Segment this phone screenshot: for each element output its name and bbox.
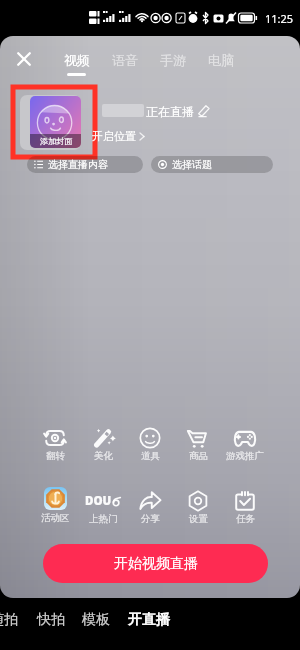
staticText: 道具: [141, 450, 160, 462]
staticText: 选择直播内容: [48, 158, 108, 171]
button[interactable]: 选择直播内容: [27, 156, 143, 173]
button[interactable]: 开启位置: [92, 129, 145, 143]
staticText: 开始视频直播: [114, 555, 198, 573]
button[interactable]: 随拍: [0, 611, 18, 629]
button[interactable]: 设置: [174, 490, 222, 525]
button[interactable]: 分享: [126, 490, 174, 525]
button[interactable]: 任务: [221, 490, 269, 525]
button[interactable]: 活动区: [31, 487, 79, 524]
staticText: 开启位置: [92, 129, 136, 143]
button[interactable]: 电脑: [207, 52, 234, 68]
button[interactable]: Add cover: [13, 87, 95, 157]
button[interactable]: 道具: [126, 427, 174, 462]
staticText: 上热门: [89, 513, 118, 525]
button[interactable]: 视频: [63, 52, 90, 76]
button[interactable]: 美化: [79, 427, 127, 462]
staticText: 分享: [141, 513, 160, 525]
staticText: 正在直播: [146, 104, 194, 119]
button[interactable]: 游戏推广: [221, 427, 269, 462]
button[interactable]: 开直播: [128, 611, 170, 629]
staticText: 美化: [94, 450, 113, 462]
staticText: 模板: [82, 611, 110, 629]
staticText: 商品: [189, 450, 208, 462]
staticText: 活动区: [41, 512, 70, 524]
staticText: 电脑: [208, 52, 234, 68]
button[interactable]: DOU: [79, 490, 127, 525]
staticText: 随拍: [0, 611, 18, 629]
button[interactable]: 翻转: [31, 427, 79, 462]
staticText: 视频: [64, 52, 90, 68]
staticText: 开直播: [128, 611, 170, 629]
staticText: 快拍: [37, 611, 65, 629]
button[interactable]: 选择话题: [151, 156, 273, 173]
staticText: 添加封面: [40, 136, 72, 146]
button[interactable]: 开始视频直播: [43, 544, 268, 583]
staticText: DOU: [85, 493, 112, 509]
staticText: 任务: [236, 513, 255, 525]
button[interactable]: 快拍: [37, 611, 65, 629]
staticText: 11:25: [265, 11, 294, 26]
button[interactable]: 商品: [174, 427, 222, 462]
staticText: 游戏推广: [226, 450, 264, 462]
staticText: 设置: [189, 513, 208, 525]
button[interactable]: Edit title: [198, 105, 210, 117]
staticText: 语音: [112, 52, 138, 68]
staticText: 选择话题: [172, 158, 212, 171]
staticText: 翻转: [46, 450, 65, 462]
button[interactable]: 模板: [82, 611, 110, 629]
button[interactable]: 手游: [159, 52, 186, 68]
staticText: 手游: [160, 52, 186, 68]
button[interactable]: 语音: [111, 52, 138, 68]
button[interactable]: Close: [11, 46, 36, 71]
